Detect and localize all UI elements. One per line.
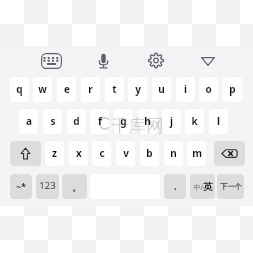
button[interactable]: v: [116, 141, 135, 166]
staticText: a: [26, 114, 32, 128]
button[interactable]: ,: [62, 174, 87, 199]
staticText: r: [88, 82, 93, 96]
button[interactable]: l: [209, 109, 228, 134]
button[interactable]: t: [105, 77, 124, 102]
staticText: m: [192, 146, 202, 160]
staticText: l: [217, 114, 220, 128]
button[interactable]: .: [164, 174, 186, 199]
staticText: y: [135, 82, 141, 96]
staticText: b: [146, 146, 153, 160]
staticText: 中/英: [193, 181, 213, 193]
button[interactable]: w: [33, 77, 52, 102]
staticText: x: [76, 146, 82, 160]
staticText: .: [174, 179, 177, 193]
button[interactable]: i: [176, 77, 195, 102]
staticText: e: [64, 82, 70, 96]
button[interactable]: Voice input: [96, 53, 111, 69]
staticText: p: [229, 82, 236, 96]
button[interactable]: h: [138, 109, 157, 134]
staticText: c: [99, 146, 105, 160]
button[interactable]: n: [164, 141, 183, 166]
button[interactable]: z: [45, 141, 64, 166]
button[interactable]: Backspace: [214, 141, 245, 166]
staticText: t: [112, 82, 117, 96]
staticText: v: [123, 146, 129, 160]
staticText: i: [184, 82, 187, 96]
button[interactable]: Settings: [148, 53, 164, 68]
staticText: 123: [39, 179, 56, 192]
button[interactable]: o: [199, 77, 218, 102]
button[interactable]: r: [81, 77, 100, 102]
button[interactable]: ~*: [10, 174, 32, 199]
button[interactable]: Keyboard layout: [41, 53, 62, 69]
staticText: u: [158, 82, 165, 96]
button[interactable]: a: [19, 109, 38, 134]
button[interactable]: Hide keyboard: [201, 57, 215, 66]
button[interactable]: b: [140, 141, 159, 166]
staticText: z: [52, 146, 57, 160]
button[interactable]: x: [69, 141, 88, 166]
button[interactable]: u: [152, 77, 171, 102]
staticText: o: [205, 82, 212, 96]
button[interactable]: 123: [36, 174, 59, 199]
button[interactable]: c: [92, 141, 111, 166]
button[interactable]: j: [162, 109, 181, 134]
button[interactable]: f: [90, 109, 109, 134]
button[interactable]: Shift: [10, 141, 41, 166]
staticText: g: [120, 114, 127, 128]
staticText: k: [191, 114, 198, 128]
button[interactable]: p: [223, 77, 242, 102]
button[interactable]: 中/英: [190, 174, 215, 199]
button[interactable]: g: [114, 109, 133, 134]
button[interactable]: s: [43, 109, 62, 134]
button[interactable]: y: [128, 77, 147, 102]
staticText: f: [98, 114, 102, 128]
staticText: j: [170, 114, 173, 128]
staticText: ,: [73, 180, 76, 194]
staticText: h: [144, 114, 151, 128]
staticText: s: [50, 114, 56, 128]
staticText: w: [38, 82, 47, 96]
button[interactable]: k: [185, 109, 204, 134]
staticText: n: [170, 146, 177, 160]
staticText: q: [16, 82, 23, 96]
button[interactable]: e: [57, 77, 76, 102]
button[interactable]: q: [10, 77, 29, 102]
staticText: d: [73, 114, 80, 128]
staticText: 千库网: [111, 115, 164, 137]
staticText: 下一个: [220, 182, 242, 191]
button[interactable]: d: [67, 109, 86, 134]
staticText: ~*: [16, 181, 26, 193]
button[interactable]: m: [187, 141, 206, 166]
button[interactable]: 下一个: [217, 174, 244, 199]
